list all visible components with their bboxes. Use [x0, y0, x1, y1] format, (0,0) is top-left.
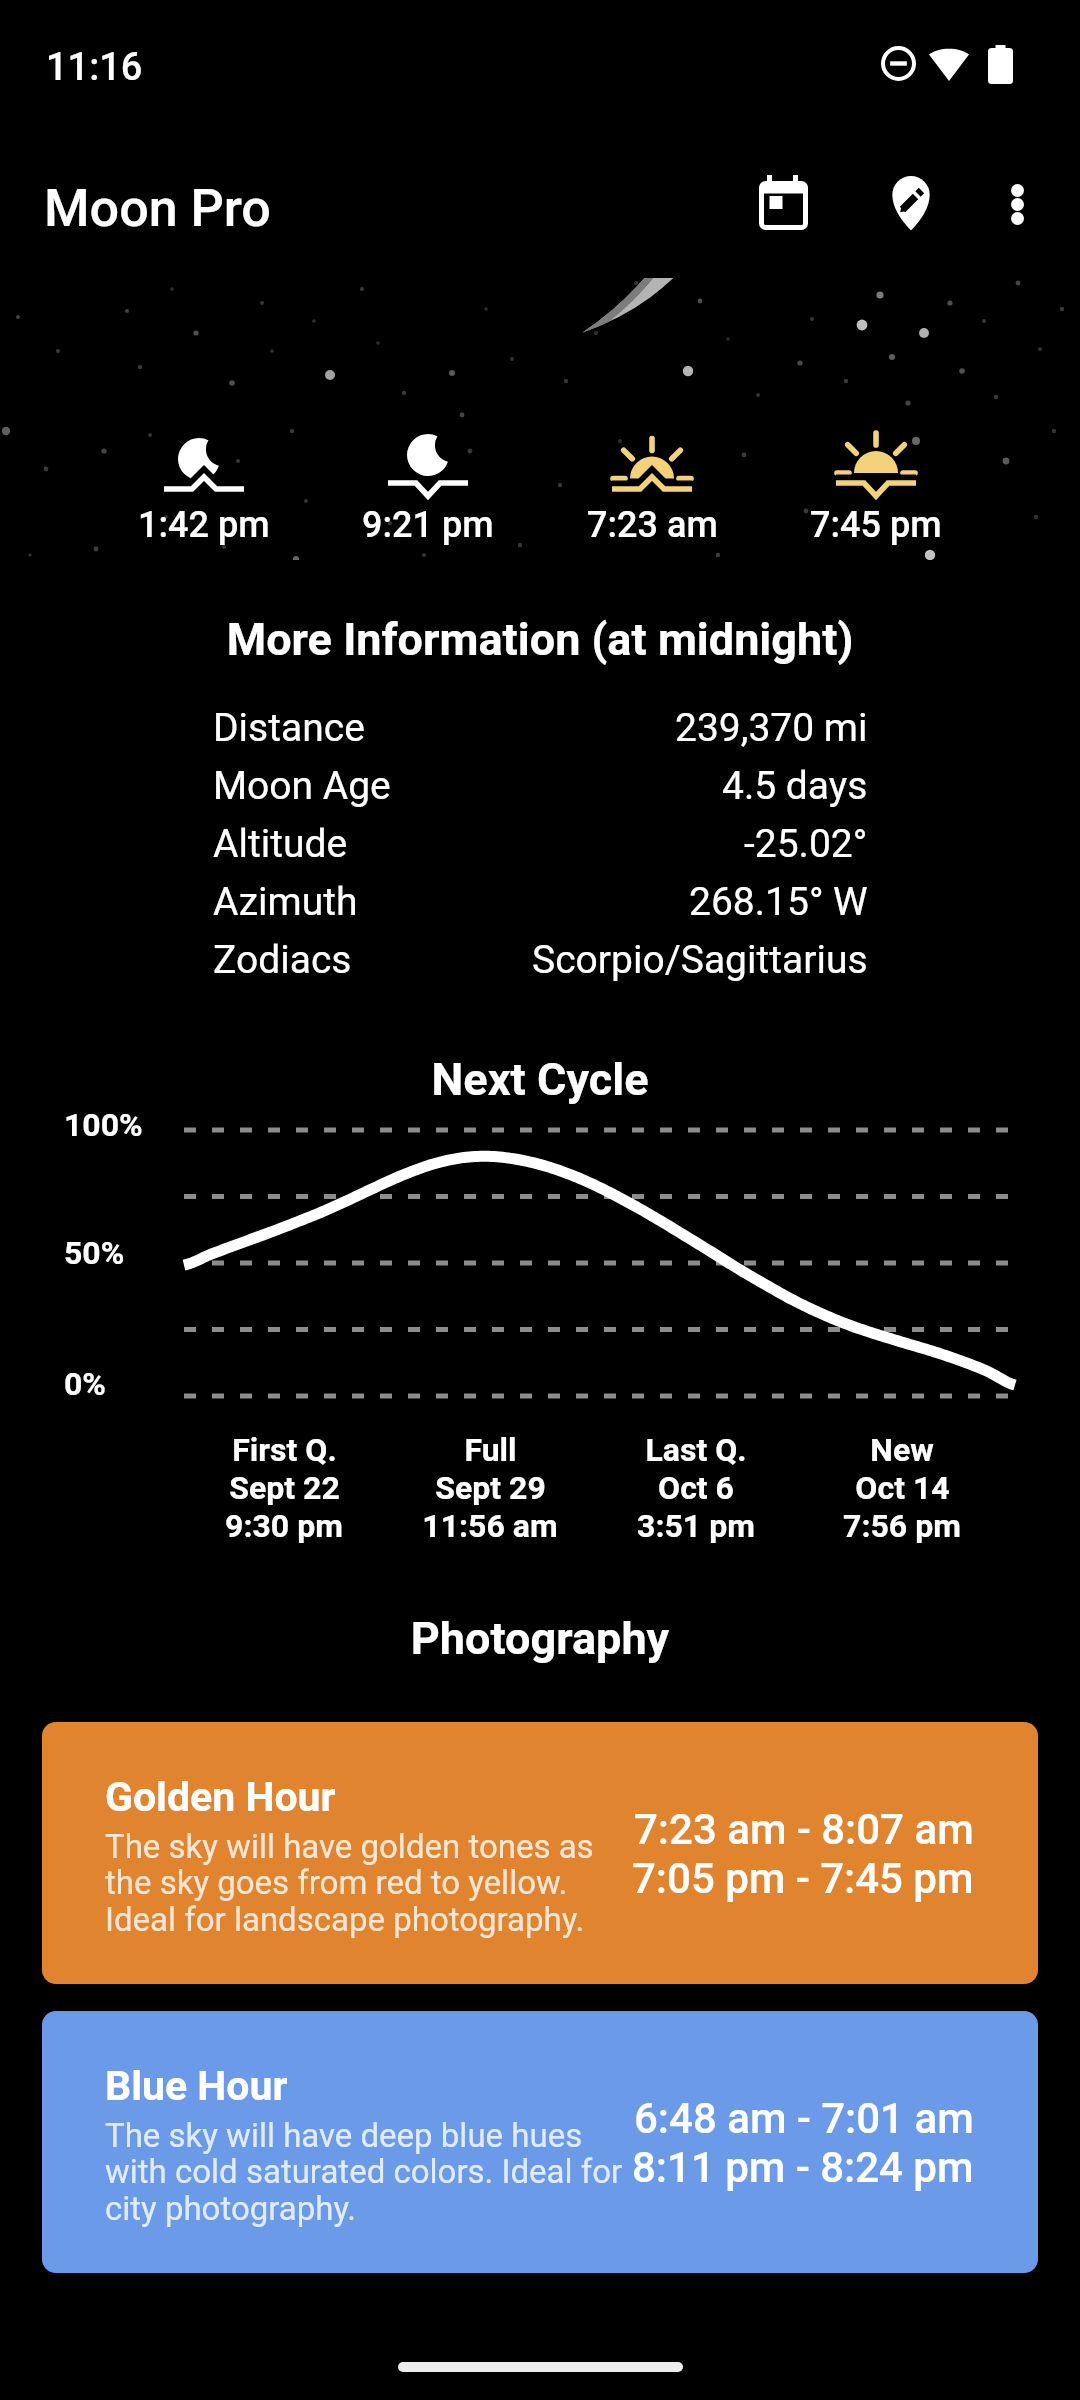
staticText: 268.15° W: [689, 879, 868, 925]
staticText: Oct 14: [855, 1469, 950, 1507]
button[interactable]: Zodiacs: [0, 931, 1080, 989]
staticText: 0%: [64, 1365, 106, 1403]
staticText: 7:05 pm - 7:45 pm: [632, 1854, 974, 1903]
staticText: 7:56 pm: [843, 1507, 961, 1545]
staticText: 7:23 am: [587, 504, 718, 546]
staticText: Distance: [213, 705, 365, 751]
staticText: Last Q.: [645, 1431, 747, 1469]
staticText: Moon Age: [213, 763, 391, 809]
button[interactable]: Distance: [0, 699, 1080, 757]
staticText: Full: [464, 1431, 517, 1469]
staticText: 50%: [64, 1234, 125, 1272]
staticText: 1:42 pm: [138, 504, 270, 546]
button[interactable]: Altitude: [0, 815, 1080, 873]
staticText: First Q.: [232, 1431, 337, 1469]
staticText: The sky will have deep blue hues with co…: [105, 2116, 625, 2228]
staticText: 239,370 mi: [675, 705, 868, 751]
staticText: 8:11 pm - 8:24 pm: [632, 2143, 974, 2192]
button[interactable]: Location: [863, 156, 959, 252]
button[interactable]: Blue Hour: [42, 2011, 1038, 2273]
staticText: Oct 6: [658, 1469, 734, 1507]
button[interactable]: Sunrise: [540, 433, 764, 546]
staticText: Next Cycle: [0, 1053, 1080, 1106]
button[interactable]: Moon Age: [0, 757, 1080, 815]
button[interactable]: Sunset: [764, 433, 988, 546]
staticText: 100%: [64, 1106, 143, 1144]
staticText: More Information (at midnight): [0, 613, 1080, 666]
staticText: Sept 29: [435, 1469, 546, 1507]
staticText: Golden Hour: [105, 1773, 336, 1821]
button[interactable]: Azimuth: [0, 873, 1080, 931]
staticText: Photography: [0, 1612, 1080, 1665]
staticText: Zodiacs: [213, 937, 352, 983]
staticText: 3:51 pm: [637, 1507, 755, 1545]
staticText: 9:30 pm: [225, 1507, 343, 1545]
button[interactable]: Calendar: [737, 156, 833, 252]
staticText: -25.02°: [744, 821, 868, 867]
staticText: Moon Pro: [44, 178, 271, 239]
staticText: Altitude: [213, 821, 348, 867]
staticText: Azimuth: [213, 879, 358, 925]
button[interactable]: Golden Hour: [42, 1722, 1038, 1984]
staticText: 11:16: [46, 45, 143, 90]
staticText: 7:23 am - 8:07 am: [634, 1805, 974, 1854]
button[interactable]: Moonset: [316, 433, 540, 546]
staticText: The sky will have golden tones as the sk…: [105, 1827, 625, 1939]
staticText: 7:45 pm: [810, 504, 942, 546]
button[interactable]: Moonrise: [92, 433, 316, 546]
staticText: 9:21 pm: [362, 504, 494, 546]
staticText: 6:48 am - 7:01 am: [634, 2094, 974, 2143]
staticText: 11:56 am: [422, 1507, 558, 1545]
staticText: 4.5 days: [722, 763, 868, 809]
staticText: New: [870, 1431, 934, 1469]
button[interactable]: More options: [975, 156, 1071, 252]
staticText: Scorpio/Sagittarius: [532, 937, 868, 983]
staticText: Blue Hour: [105, 2062, 288, 2110]
staticText: Sept 22: [229, 1469, 340, 1507]
